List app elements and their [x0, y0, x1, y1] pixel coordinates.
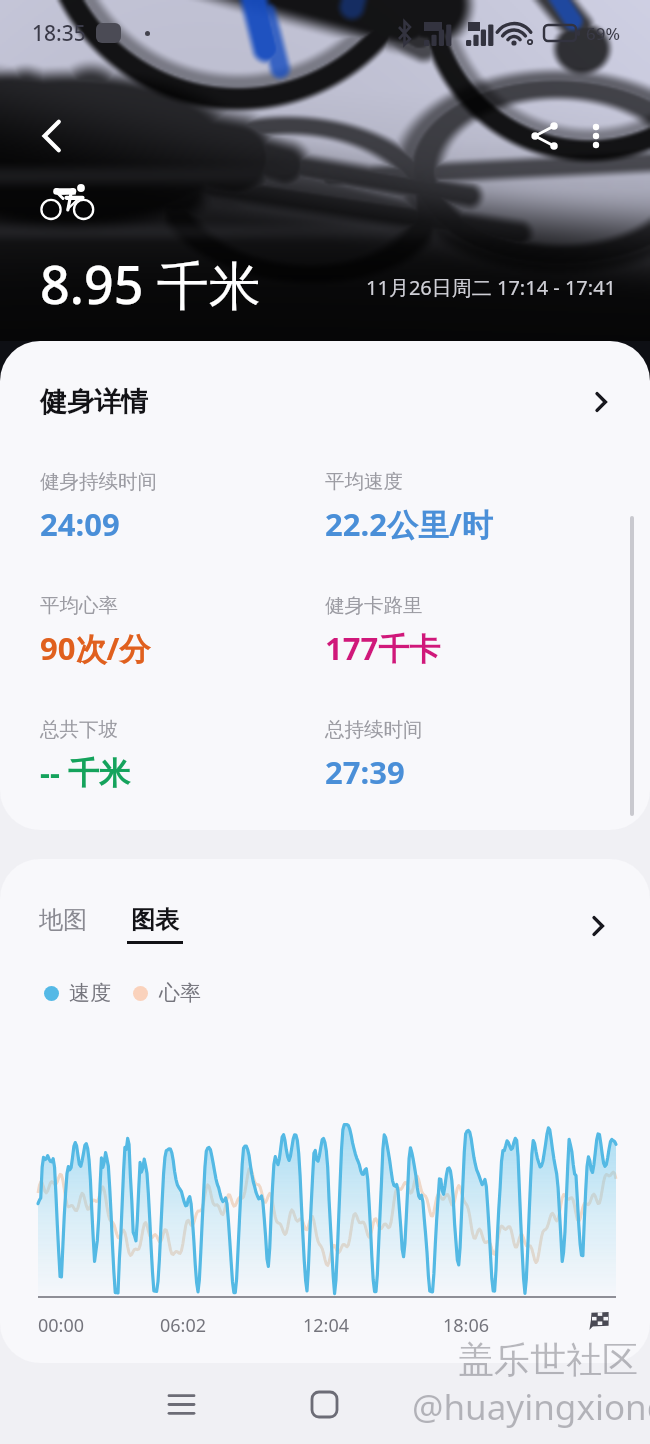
- staticText: 健身持续时间: [40, 469, 157, 494]
- staticText: 90次/分: [40, 627, 151, 669]
- staticText: 24:09: [40, 503, 120, 545]
- staticText: 69%: [586, 22, 620, 45]
- staticText: 12:04: [303, 1313, 350, 1338]
- staticText: 8.95 千米: [40, 248, 261, 319]
- staticText: 健身详情: [40, 385, 148, 419]
- staticText: 18:06: [443, 1313, 490, 1338]
- staticText: 06:02: [160, 1313, 207, 1338]
- staticText: 18:35: [32, 19, 86, 48]
- staticText: @huayingxiong: [412, 1383, 650, 1431]
- staticText: 地图: [39, 905, 87, 935]
- staticText: 27:39: [325, 751, 405, 793]
- button[interactable]: Expand chart: [578, 906, 618, 946]
- staticText: 速度: [69, 980, 111, 1006]
- staticText: 平均心率: [40, 593, 118, 618]
- button[interactable]: More options: [570, 110, 622, 162]
- staticText: 总共下坡: [40, 717, 118, 742]
- staticText: 盖乐世社区: [458, 1337, 638, 1382]
- staticText: 图表: [131, 905, 179, 935]
- button[interactable]: Recent apps: [145, 1376, 217, 1432]
- staticText: 22.2公里/时: [325, 503, 493, 545]
- button[interactable]: 图表: [118, 897, 192, 952]
- button[interactable]: Back: [26, 110, 78, 162]
- button[interactable]: Share: [519, 110, 571, 162]
- staticText: 平均速度: [325, 469, 403, 494]
- staticText: -- 千米: [40, 751, 130, 793]
- button[interactable]: Home: [288, 1376, 360, 1432]
- staticText: 11月26日周二 17:14 - 17:41: [366, 274, 617, 301]
- staticText: 心率: [159, 980, 201, 1006]
- staticText: 177千卡: [325, 627, 441, 669]
- button[interactable]: 地图: [30, 897, 96, 943]
- staticText: 00:00: [38, 1313, 85, 1338]
- button[interactable]: 健身详情: [0, 341, 650, 463]
- staticText: 总持续时间: [325, 717, 423, 742]
- button[interactable]: Back: [430, 1376, 502, 1432]
- staticText: 健身卡路里: [325, 593, 423, 618]
